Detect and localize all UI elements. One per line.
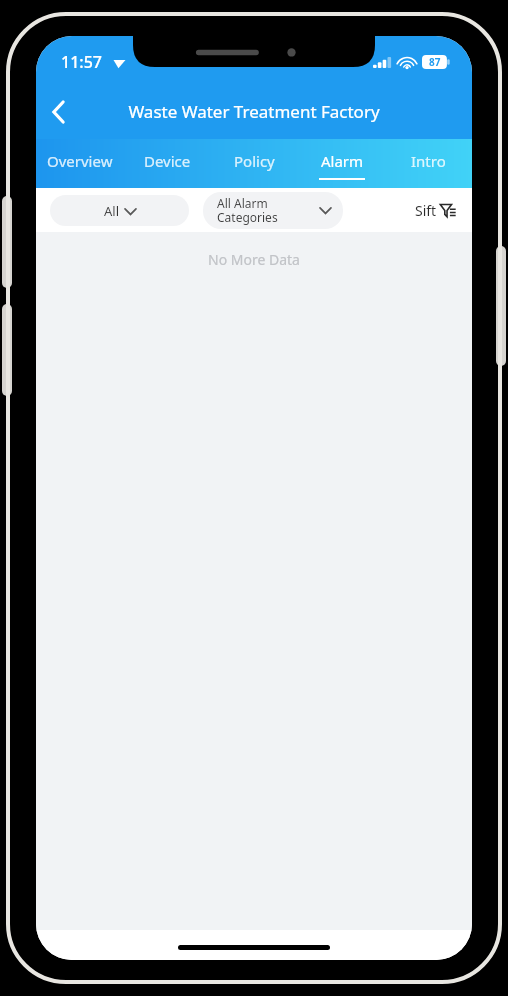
staticText: Alarm: [321, 151, 364, 171]
staticText: All: [104, 202, 120, 220]
button[interactable]: Device: [124, 139, 211, 188]
button[interactable]: Intro: [385, 139, 472, 188]
staticText: Waste Water Treatment Factory: [128, 100, 380, 123]
staticText: All Alarm Categories: [217, 195, 320, 226]
staticText: No More Data: [208, 250, 300, 269]
staticText: Overview: [47, 151, 113, 171]
staticText: Policy: [234, 151, 275, 171]
button[interactable]: Policy: [211, 139, 298, 188]
button[interactable]: All Alarm Categories: [203, 192, 343, 229]
button[interactable]: Sift: [413, 195, 458, 226]
button[interactable]: All: [50, 195, 189, 226]
button[interactable]: Alarm: [298, 139, 385, 188]
staticText: Intro: [411, 151, 446, 171]
staticText: Sift: [415, 201, 437, 220]
button[interactable]: Overview: [36, 139, 124, 188]
staticText: 11:57: [61, 51, 102, 73]
button[interactable]: Back: [36, 90, 80, 134]
staticText: 87: [429, 55, 441, 69]
staticText: Device: [144, 151, 191, 171]
